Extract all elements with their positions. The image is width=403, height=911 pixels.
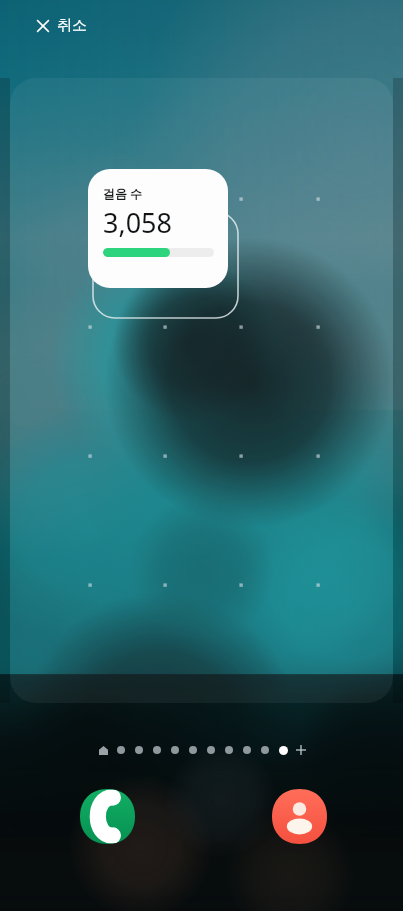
button[interactable]: Page 9: [238, 741, 256, 759]
button[interactable]: Page 4: [148, 741, 166, 759]
button[interactable]: Add page: [292, 741, 310, 759]
staticText: 3,058: [103, 204, 173, 241]
button[interactable]: Page 5: [166, 741, 184, 759]
button[interactable]: Phone: [80, 789, 135, 844]
button[interactable]: Page 6: [184, 741, 202, 759]
button[interactable]: Page 3: [130, 741, 148, 759]
button[interactable]: Contacts: [272, 789, 327, 844]
button[interactable]: Page 7: [202, 741, 220, 759]
button[interactable]: Home page: [94, 741, 112, 759]
button[interactable]: 걸음 수: [88, 169, 228, 288]
button[interactable]: Page 2: [112, 741, 130, 759]
button[interactable]: Current page: [274, 741, 292, 759]
button[interactable]: Page 8: [220, 741, 238, 759]
button[interactable]: 취소: [30, 10, 93, 41]
staticText: 취소: [57, 16, 87, 35]
staticText: 걸음 수: [103, 185, 143, 201]
button[interactable]: Page 10: [256, 741, 274, 759]
